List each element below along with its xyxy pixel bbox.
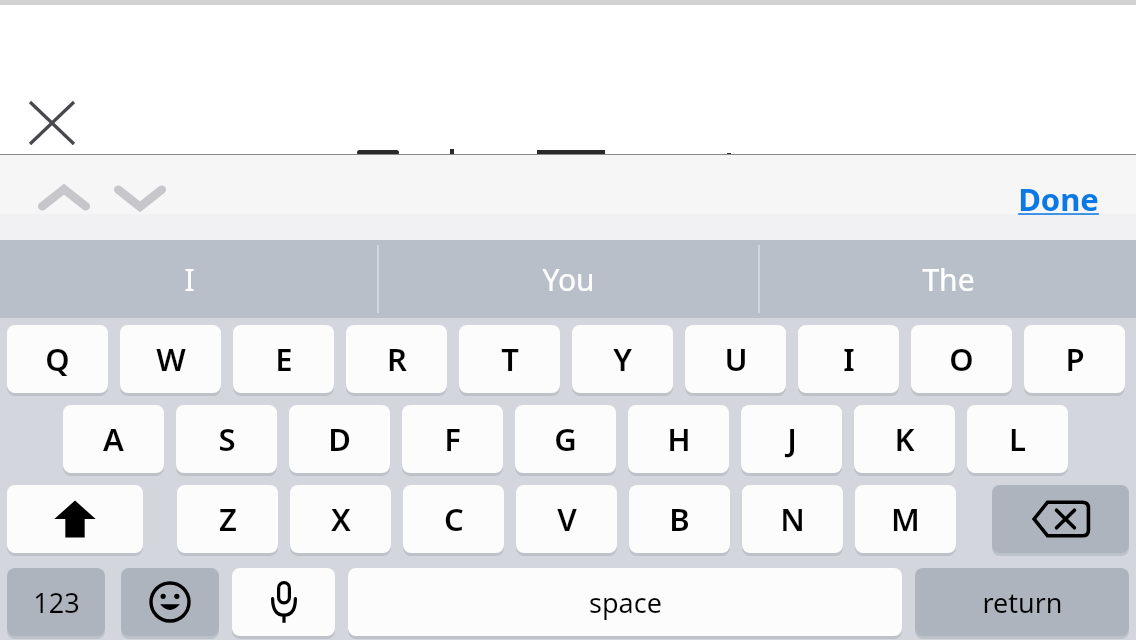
- button[interactable]: space: [348, 568, 902, 636]
- button[interactable]: You: [379, 240, 758, 318]
- button[interactable]: The: [759, 240, 1136, 318]
- staticText: Q: [45, 338, 70, 380]
- staticText: H: [667, 418, 691, 460]
- button[interactable]: U: [685, 325, 786, 393]
- button[interactable]: E: [233, 325, 334, 393]
- staticText: You: [542, 259, 595, 300]
- button[interactable]: 123: [7, 568, 105, 636]
- button[interactable]: Dictate: [232, 568, 335, 636]
- staticText: I: [184, 259, 195, 300]
- button[interactable]: B: [629, 485, 730, 553]
- button[interactable]: G: [515, 405, 616, 473]
- button[interactable]: Done: [1000, 178, 1116, 220]
- staticText: N: [780, 498, 805, 540]
- button[interactable]: W: [120, 325, 221, 393]
- staticText: Done: [1018, 178, 1099, 220]
- button[interactable]: F: [402, 405, 503, 473]
- button[interactable]: Z: [177, 485, 278, 553]
- staticText: V: [557, 498, 577, 540]
- staticText: S: [218, 418, 236, 460]
- button[interactable]: C: [403, 485, 504, 553]
- staticText: D: [328, 418, 351, 460]
- button[interactable]: I: [798, 325, 899, 393]
- button[interactable]: return: [915, 568, 1129, 636]
- button[interactable]: P: [1024, 325, 1125, 393]
- staticText: Z: [219, 498, 237, 540]
- staticText: I: [843, 338, 855, 380]
- button[interactable]: D: [289, 405, 390, 473]
- button[interactable]: Y: [572, 325, 673, 393]
- staticText: The: [922, 259, 975, 300]
- button[interactable]: I: [0, 240, 379, 318]
- staticText: 123: [33, 584, 80, 621]
- button[interactable]: T: [459, 325, 560, 393]
- staticText: E: [275, 338, 293, 380]
- button[interactable]: O: [911, 325, 1012, 393]
- button[interactable]: N: [742, 485, 843, 553]
- button[interactable]: H: [628, 405, 729, 473]
- staticText: X: [331, 498, 351, 540]
- button[interactable]: R: [346, 325, 447, 393]
- button[interactable]: Emoji: [121, 568, 219, 636]
- button[interactable]: V: [516, 485, 617, 553]
- button[interactable]: M: [855, 485, 956, 553]
- staticText: U: [724, 338, 748, 380]
- staticText: G: [554, 418, 577, 460]
- staticText: L: [1009, 418, 1026, 460]
- button[interactable]: Close: [22, 94, 82, 152]
- staticText: Y: [613, 338, 632, 380]
- staticText: O: [949, 338, 974, 380]
- staticText: J: [787, 418, 797, 460]
- button[interactable]: Shift: [7, 485, 143, 553]
- button[interactable]: Previous field: [32, 172, 96, 224]
- staticText: T: [501, 338, 519, 380]
- button[interactable]: S: [176, 405, 277, 473]
- button[interactable]: A: [63, 405, 164, 473]
- button[interactable]: K: [854, 405, 955, 473]
- staticText: K: [894, 418, 915, 460]
- button[interactable]: Backspace: [992, 485, 1129, 553]
- staticText: R: [387, 338, 407, 380]
- staticText: B: [669, 498, 690, 540]
- staticText: M: [891, 498, 920, 540]
- staticText: C: [444, 498, 464, 540]
- button[interactable]: J: [741, 405, 842, 473]
- staticText: P: [1065, 338, 1085, 380]
- staticText: F: [444, 418, 461, 460]
- staticText: return: [982, 584, 1063, 621]
- staticText: W: [156, 338, 186, 380]
- staticText: A: [103, 418, 124, 460]
- button[interactable]: Next field: [108, 172, 172, 224]
- button[interactable]: Q: [7, 325, 108, 393]
- button[interactable]: L: [967, 405, 1068, 473]
- staticText: space: [589, 584, 662, 621]
- button[interactable]: X: [290, 485, 391, 553]
